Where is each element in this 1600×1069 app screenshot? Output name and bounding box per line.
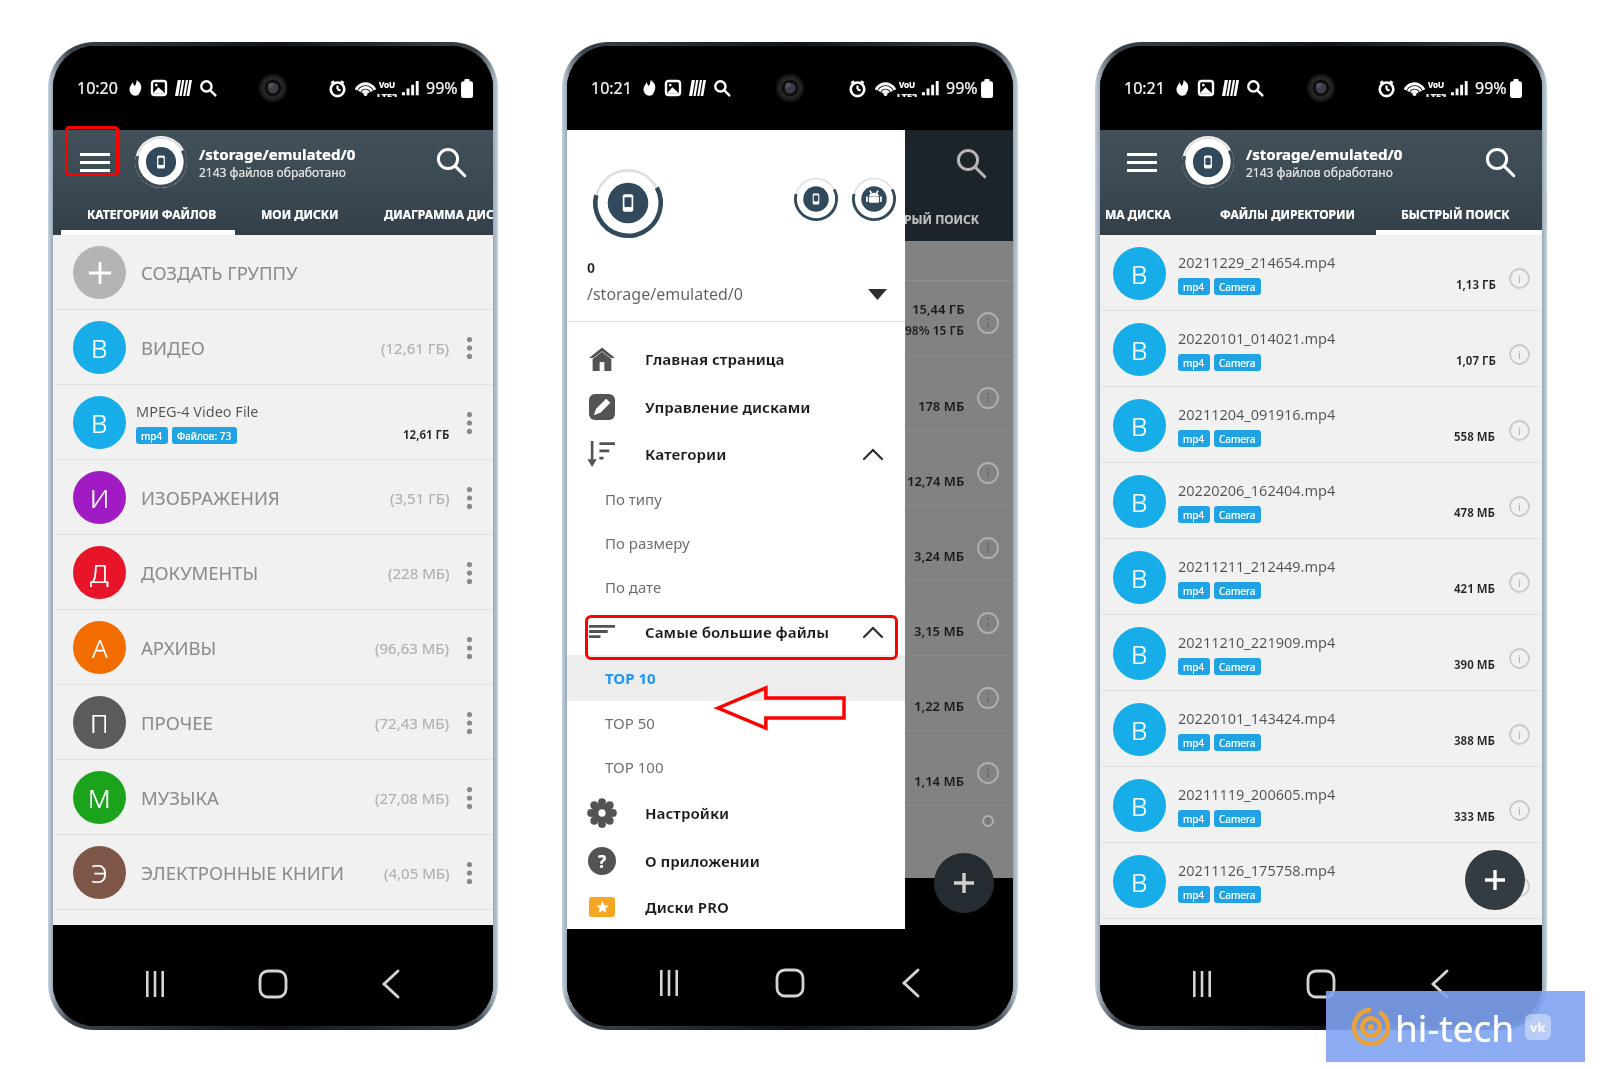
button[interactable]: Самые большие файлы (567, 609, 905, 655)
button[interactable]: КАТЕГОРИИ ФАЙЛОВ (87, 193, 217, 235)
button[interactable]: В (1100, 387, 1542, 463)
staticText: Настройки (645, 803, 730, 823)
button[interactable]: По типу (567, 477, 905, 521)
staticText: БЫСТРЫЙ ПОИСК (1401, 206, 1510, 222)
button[interactable]: ФАЙЛЫ ДИРЕКТОРИИ (1220, 193, 1355, 235)
button[interactable]: Управление дисками (567, 383, 905, 431)
button[interactable]: Э (53, 835, 493, 910)
button[interactable]: М (53, 760, 493, 835)
button[interactable]: Internal storage (794, 177, 838, 221)
button[interactable]: В (53, 310, 493, 385)
button[interactable]: More options (458, 778, 480, 818)
staticText: И (90, 480, 110, 515)
button[interactable]: В (53, 385, 493, 460)
button[interactable]: TOP 100 (567, 745, 905, 789)
button[interactable]: Home (1295, 958, 1347, 1010)
button[interactable]: В (1100, 691, 1542, 767)
button[interactable]: Д (53, 535, 493, 610)
staticText: Самые большие файлы (645, 622, 829, 642)
button[interactable]: В (1100, 767, 1542, 843)
button[interactable]: TOP 10 (567, 655, 905, 701)
button[interactable]: More options (458, 628, 480, 668)
staticText: В (91, 405, 108, 440)
button[interactable]: TOP 50 (567, 701, 905, 745)
button[interactable]: More options (458, 403, 480, 443)
staticText: ДИАГРАММА ДИС (384, 206, 493, 222)
button[interactable]: БЫСТРЫЙ ПОИСК (1401, 193, 1510, 235)
button[interactable]: Info (1508, 267, 1530, 289)
staticText: МА ДИСКА (1105, 206, 1171, 222)
button[interactable]: СОЗДАТЬ ГРУППУ (53, 235, 493, 310)
button[interactable]: В (1100, 539, 1542, 615)
button[interactable]: А (53, 610, 493, 685)
staticText: i (1518, 575, 1521, 590)
button[interactable]: В (1100, 463, 1542, 539)
button[interactable]: Info (1508, 495, 1530, 517)
button[interactable]: More options (458, 553, 480, 593)
staticText: 20220206_162404.mp4 (1178, 480, 1336, 500)
staticText: Э (91, 855, 108, 890)
staticText: mp4 (1183, 508, 1205, 522)
staticText: mp4 (1183, 660, 1205, 674)
button[interactable]: Главная страница (567, 335, 905, 383)
staticText: 20211211_212449.mp4 (1178, 556, 1336, 576)
button[interactable]: Info (1508, 647, 1530, 669)
staticText: Camera (1219, 812, 1256, 826)
button[interactable]: Search (1478, 140, 1522, 184)
staticText: 10:20 (77, 77, 118, 99)
button[interactable]: Recents (643, 957, 695, 1009)
button[interactable]: Info (1508, 799, 1530, 821)
button[interactable]: Search (429, 140, 473, 184)
button[interactable]: Home (247, 958, 299, 1010)
staticText: Главная страница (645, 349, 785, 369)
button[interactable]: Back (1414, 958, 1466, 1010)
button[interactable]: По размеру (567, 521, 905, 565)
button[interactable]: В (1100, 843, 1542, 919)
staticText: i (1518, 499, 1521, 514)
button[interactable]: В (1100, 311, 1542, 387)
staticText: 15,44 ГБ (912, 300, 965, 318)
button[interactable]: И (53, 460, 493, 535)
staticText: (96,63 МБ) (375, 638, 450, 658)
button[interactable]: В (1100, 615, 1542, 691)
button[interactable]: Back (365, 958, 417, 1010)
button[interactable]: По дате (567, 565, 905, 609)
staticText: VoU (899, 79, 916, 90)
button[interactable]: Диски PRO (567, 885, 905, 929)
button[interactable]: Recents (129, 958, 181, 1010)
button[interactable]: Add (934, 853, 994, 913)
button[interactable]: Info (1508, 571, 1530, 593)
button[interactable]: More options (458, 853, 480, 893)
staticText: МУЗЫКА (141, 785, 219, 810)
button[interactable]: ДИАГРАММА ДИС (384, 193, 493, 235)
button[interactable]: ? (567, 837, 905, 885)
button[interactable]: More options (458, 328, 480, 368)
staticText: 390 МБ (1454, 657, 1496, 673)
staticText: (72,43 МБ) (375, 713, 450, 733)
staticText: 478 МБ (1454, 505, 1496, 521)
button[interactable]: More options (458, 703, 480, 743)
button[interactable]: Info (1508, 723, 1530, 745)
button[interactable]: Menu (1116, 137, 1168, 187)
button[interactable]: МА ДИСКА (1105, 193, 1171, 235)
button[interactable]: Info (1508, 419, 1530, 441)
button[interactable]: Настройки (567, 789, 905, 837)
button[interactable]: Info (1508, 343, 1530, 365)
button[interactable]: More options (458, 478, 480, 518)
staticText: По размеру (605, 533, 690, 553)
button[interactable]: В (1100, 235, 1542, 311)
button[interactable]: Категории (567, 431, 905, 477)
button[interactable]: Recents (1176, 958, 1228, 1010)
button[interactable]: МОИ ДИСКИ (261, 193, 339, 235)
button[interactable]: Android storage (852, 177, 896, 221)
button[interactable]: Back (885, 957, 937, 1009)
button[interactable]: Menu (69, 137, 121, 187)
button[interactable]: Info (1508, 875, 1530, 897)
staticText: 99% (426, 77, 458, 99)
staticText: mp4 (1183, 888, 1205, 902)
button[interactable]: Add (1465, 850, 1525, 910)
button[interactable]: Home (764, 957, 816, 1009)
staticText: i (1518, 271, 1521, 286)
button[interactable]: П (53, 685, 493, 760)
staticText: vk (1530, 1018, 1546, 1036)
